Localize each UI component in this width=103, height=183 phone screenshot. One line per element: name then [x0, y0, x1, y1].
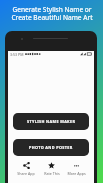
- staticText: Share App: [17, 171, 35, 176]
- staticText: 3:53 PM: [10, 52, 24, 57]
- button[interactable]: Rate This: [39, 159, 64, 176]
- button[interactable]: More Apps: [64, 159, 89, 176]
- other: Share: [23, 162, 30, 169]
- button[interactable]: Share: [13, 159, 39, 176]
- button[interactable]: STYLISH NAME MAKER: [13, 113, 89, 130]
- other: More Apps: [73, 162, 80, 169]
- staticText: Generate Stylish Name or Create Beautifu…: [11, 5, 93, 22]
- button[interactable]: PHOTO AND POSTER: [13, 139, 89, 156]
- staticText: More Apps: [67, 171, 86, 176]
- staticText: PHOTO AND POSTER: [29, 145, 73, 150]
- staticText: Rate This: [44, 171, 60, 176]
- other: Rate This: [48, 162, 55, 169]
- staticText: STYLISH NAME MAKER: [27, 119, 76, 124]
